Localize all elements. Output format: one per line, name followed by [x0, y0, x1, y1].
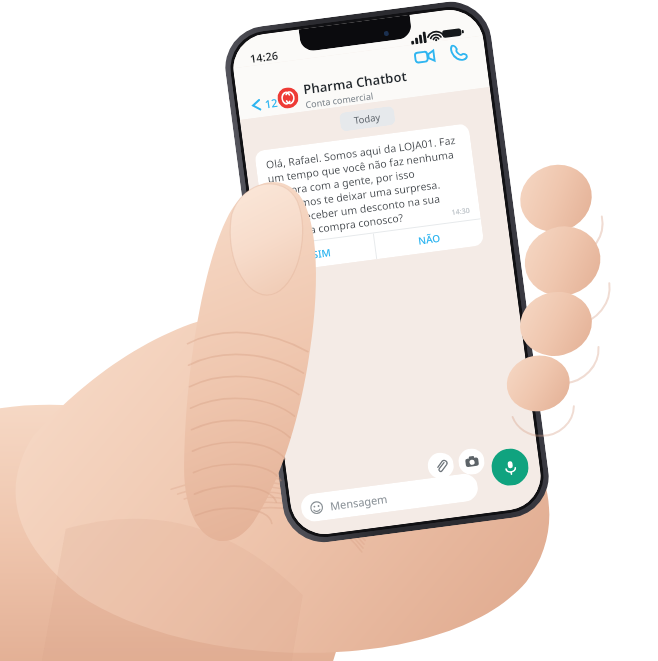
button[interactable]: Voice call [444, 38, 472, 66]
button[interactable]: SIM [267, 233, 376, 273]
button[interactable]: Video call [410, 42, 440, 72]
staticText: Mensagem [329, 491, 389, 513]
staticText: 14:26 [249, 47, 280, 66]
staticText: Conta comercial [305, 89, 375, 110]
staticText: Today [353, 111, 382, 127]
button[interactable]: Record voice message [489, 446, 531, 488]
button[interactable]: Attach [426, 451, 455, 480]
button[interactable]: NÃO [374, 219, 484, 259]
button[interactable]: Back [245, 91, 284, 117]
staticText: SIM [311, 245, 332, 262]
staticText: NÃO [417, 231, 441, 248]
staticText: Pharma Chatbot [302, 67, 408, 98]
button[interactable]: Pharma Chatbot [275, 67, 409, 114]
staticText: 14:30 [451, 206, 470, 218]
button[interactable]: Camera [457, 447, 486, 476]
button[interactable]: Mensagem [299, 472, 479, 523]
staticText: 12 [264, 95, 279, 111]
staticText: Olá, Rafael. Somos aqui da LOJA01. Faz u… [265, 132, 470, 241]
